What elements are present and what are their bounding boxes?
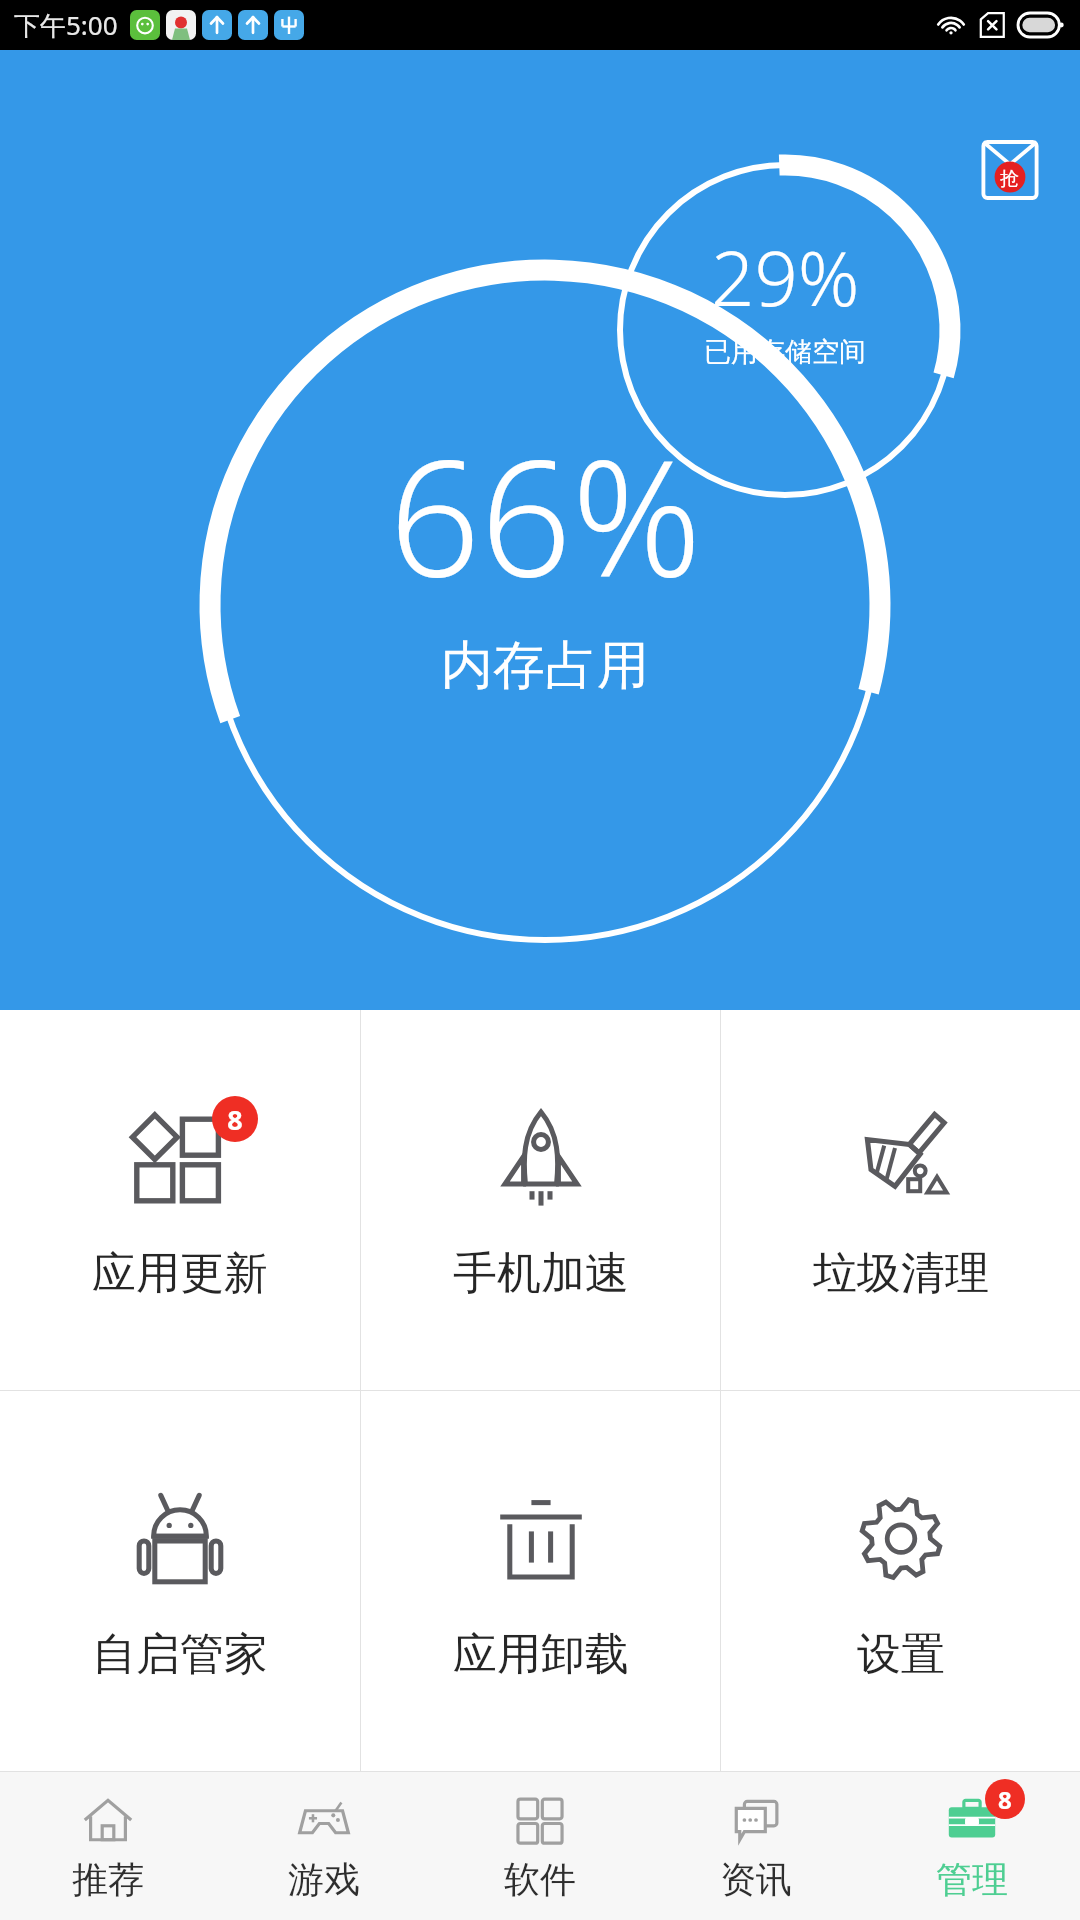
button[interactable]: 推荐 [0,1772,216,1920]
button[interactable]: 应用卸载 [361,1391,720,1771]
staticText: 管理 [936,1857,1008,1902]
button[interactable]: 手机加速 [361,1010,720,1390]
staticText: 抢 [1000,167,1019,191]
staticText: 资讯 [720,1857,792,1902]
staticText: 8 [998,1783,1012,1816]
button[interactable]: 红包 [975,135,1045,205]
staticText: 29% [711,225,860,329]
button[interactable]: 软件 [432,1772,648,1920]
staticText: 软件 [504,1857,576,1902]
button[interactable]: 8 [0,1010,360,1390]
staticText: 已用存储空间 [704,335,866,369]
staticText: 推荐 [72,1857,144,1902]
button[interactable]: 自启管家 [0,1391,360,1771]
staticText: 66% [389,405,702,623]
staticText: 游戏 [288,1857,360,1902]
staticText: 8 [227,1101,243,1138]
staticText: 设置 [857,1627,945,1682]
staticText: 应用更新 [92,1246,268,1301]
button[interactable]: 8 [864,1772,1080,1920]
staticText: 下午5:00 [14,7,118,43]
button[interactable]: 资讯 [648,1772,864,1920]
staticText: 垃圾清理 [813,1246,989,1301]
staticText: 手机加速 [453,1246,629,1301]
staticText: 内存占用 [441,633,649,699]
button[interactable]: 设置 [721,1391,1080,1771]
staticText: 应用卸载 [453,1627,629,1682]
button[interactable]: 游戏 [216,1772,432,1920]
button[interactable]: 垃圾清理 [721,1010,1080,1390]
staticText: 自启管家 [92,1627,268,1682]
